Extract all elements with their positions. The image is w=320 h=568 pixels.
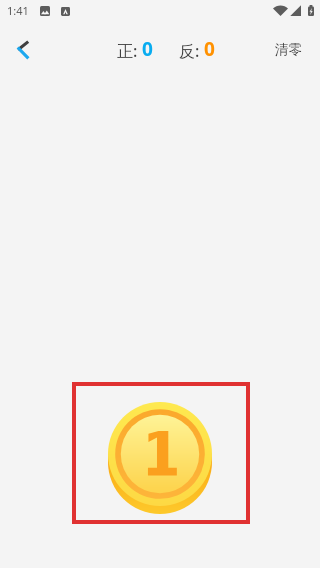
staticText: 正: <box>117 40 138 62</box>
button[interactable]: 清零 <box>261 21 320 78</box>
staticText: 反: <box>179 40 200 62</box>
button[interactable]: Back <box>0 21 46 78</box>
staticText: 1:41 <box>7 3 29 18</box>
staticText: 0 <box>142 36 153 62</box>
button[interactable]: Flip coin <box>108 402 212 514</box>
staticText: 清零 <box>275 41 302 58</box>
staticText: 0 <box>204 36 215 62</box>
